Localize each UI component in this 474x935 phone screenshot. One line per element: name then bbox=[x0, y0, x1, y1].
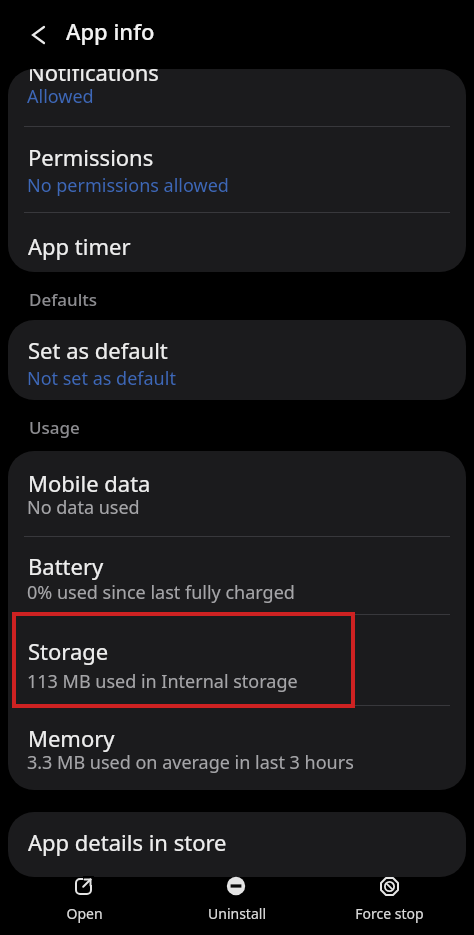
staticText: 0% used since last fully charged bbox=[27, 580, 295, 605]
staticText: Notifications bbox=[28, 69, 159, 87]
staticText: Permissions bbox=[28, 142, 154, 172]
staticText: 113 MB used in Internal storage bbox=[27, 669, 298, 694]
staticText: Battery bbox=[28, 551, 104, 581]
staticText: Allowed bbox=[27, 84, 94, 109]
staticText: Defaults bbox=[29, 288, 97, 311]
staticText: Force stop bbox=[355, 904, 424, 923]
staticText: App info bbox=[66, 16, 155, 46]
staticText: Memory bbox=[28, 723, 115, 753]
staticText: Set as default bbox=[28, 335, 168, 365]
staticText: No permissions allowed bbox=[27, 173, 229, 198]
staticText: Open bbox=[66, 904, 103, 923]
staticText: Not set as default bbox=[27, 366, 176, 391]
staticText: Uninstall bbox=[208, 904, 266, 923]
staticText: Mobile data bbox=[28, 468, 151, 498]
staticText: No data used bbox=[27, 495, 140, 520]
staticText: 3.3 MB used on average in last 3 hours bbox=[27, 750, 354, 775]
staticText: Usage bbox=[29, 416, 80, 439]
staticText: App timer bbox=[28, 231, 131, 261]
staticText: App details in store bbox=[28, 827, 227, 857]
staticText: Storage bbox=[28, 636, 109, 666]
